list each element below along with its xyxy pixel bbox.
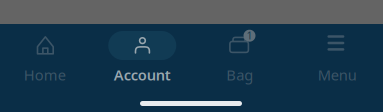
button[interactable]: 1 (191, 24, 288, 84)
button[interactable]: Account (93, 24, 191, 84)
staticText: Bag (226, 65, 253, 84)
staticText: Menu (318, 65, 357, 84)
button[interactable]: Menu (288, 24, 383, 84)
staticText: 1 (246, 28, 252, 42)
staticText: Home (24, 65, 66, 84)
button[interactable]: Home (0, 24, 93, 84)
staticText: Account (114, 65, 171, 84)
